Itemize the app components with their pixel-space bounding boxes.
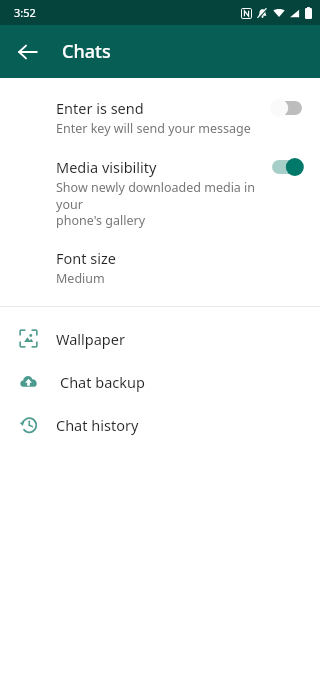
button[interactable]: Enter is send	[0, 88, 320, 147]
staticText: Chat history	[56, 415, 139, 435]
staticText: Chats	[62, 39, 111, 64]
staticText: 3:52	[14, 5, 36, 20]
button[interactable]: Wallpaper	[0, 317, 320, 360]
staticText: Enter is send	[56, 98, 144, 118]
button[interactable]: On	[270, 158, 304, 176]
button[interactable]: Font size	[0, 238, 320, 295]
staticText: Chat backup	[60, 372, 145, 392]
button[interactable]: Chat history	[0, 403, 320, 446]
button[interactable]: Back	[8, 32, 48, 72]
staticText: Medium	[56, 270, 105, 287]
staticText: Media visibility	[56, 157, 157, 177]
staticText: Show newly downloaded media in your phon…	[56, 179, 262, 228]
button[interactable]: Media visibility	[0, 147, 320, 238]
staticText: Enter key will send your message	[56, 120, 251, 137]
button[interactable]: Chat backup	[0, 360, 320, 403]
staticText: Wallpaper	[56, 329, 125, 349]
button[interactable]: Off	[270, 99, 304, 117]
staticText: Font size	[56, 248, 116, 268]
